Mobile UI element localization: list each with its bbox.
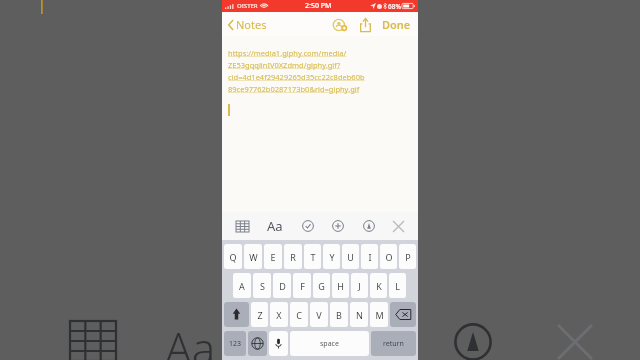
staticText: Aa [267, 217, 283, 235]
button[interactable]: F [293, 273, 311, 298]
staticText: Q [229, 251, 237, 263]
button[interactable]: 123 [224, 331, 246, 356]
staticText: J [358, 280, 361, 292]
staticText: ZE53gqqlinIV0XZdmd/giphy.gif? [228, 60, 341, 70]
staticText: H [337, 280, 344, 292]
staticText: Y [329, 251, 335, 263]
button[interactable]: Q [224, 244, 242, 269]
button[interactable]: Add [330, 218, 346, 234]
staticText: L [395, 280, 400, 292]
staticText: R [290, 251, 296, 263]
button[interactable]: M [370, 302, 388, 327]
staticText: G [318, 280, 325, 292]
button[interactable]: Close [391, 219, 406, 234]
staticText: E [270, 251, 276, 263]
button[interactable]: T [304, 244, 321, 269]
button[interactable]: C [290, 302, 308, 327]
button[interactable]: Switch keyboard [248, 331, 267, 356]
button[interactable]: R [284, 244, 302, 269]
staticText: space [320, 339, 339, 349]
button[interactable]: Y [323, 244, 340, 269]
staticText: A [239, 280, 245, 292]
button[interactable]: J [351, 273, 368, 298]
staticText: 123 [229, 339, 242, 349]
staticText: U [347, 251, 354, 263]
button[interactable]: B [330, 302, 348, 327]
button[interactable]: S [253, 273, 271, 298]
staticText: Z [257, 309, 263, 321]
button[interactable]: V [310, 302, 328, 327]
staticText: cid=4d1e4f29429265d35cc22c8deb60b [228, 72, 365, 82]
staticText: X [276, 309, 282, 321]
button[interactable]: Checklist [300, 218, 316, 234]
button[interactable]: E [264, 244, 282, 269]
staticText: 89ce97762b0287173b0&rid=giphy.gif [228, 84, 360, 94]
staticText: OISTER [237, 2, 258, 10]
staticText: M [375, 309, 384, 321]
staticText: N [356, 309, 363, 321]
button[interactable]: Aa [265, 215, 285, 237]
button[interactable]: P [399, 244, 416, 269]
staticText: 68% [388, 2, 401, 11]
button[interactable]: Shift [224, 302, 249, 327]
staticText: 2:50 PM [305, 1, 332, 11]
staticText: Done [382, 17, 411, 32]
staticText: O [385, 251, 393, 263]
button[interactable]: Dictate [269, 331, 288, 356]
button[interactable]: L [389, 273, 406, 298]
button[interactable]: A [233, 273, 251, 298]
staticText: V [316, 309, 322, 321]
button[interactable]: O [380, 244, 397, 269]
staticText: T [310, 251, 316, 263]
button[interactable]: I [361, 244, 378, 269]
button[interactable]: K [370, 273, 387, 298]
button[interactable]: Backspace [390, 302, 416, 327]
button[interactable]: X [270, 302, 288, 327]
staticText: Aa [165, 318, 216, 360]
button[interactable]: W [244, 244, 262, 269]
button[interactable]: H [332, 273, 349, 298]
button[interactable]: Table [234, 219, 251, 234]
button[interactable]: Add people [330, 15, 350, 35]
staticText: W [249, 251, 258, 263]
button[interactable]: Z [251, 302, 268, 327]
staticText: K [376, 280, 382, 292]
button[interactable]: Markup [361, 218, 377, 234]
button[interactable]: Notes [226, 14, 269, 35]
button[interactable]: N [350, 302, 368, 327]
button[interactable]: Share [357, 15, 374, 35]
button[interactable]: U [342, 244, 359, 269]
staticText: Notes [236, 17, 267, 32]
staticText: https://media1.giphy.com/media/ [228, 48, 347, 58]
staticText: I [368, 251, 372, 263]
staticText: return [383, 339, 404, 349]
button[interactable]: Done [380, 14, 413, 35]
staticText: B [336, 309, 342, 321]
button[interactable]: return [371, 331, 416, 356]
button[interactable]: G [313, 273, 330, 298]
button[interactable]: D [273, 273, 291, 298]
staticText: F [300, 280, 305, 292]
staticText: P [405, 251, 411, 263]
button[interactable]: space [290, 331, 369, 356]
staticText: C [296, 309, 302, 321]
staticText: S [260, 280, 265, 292]
staticText: D [279, 280, 286, 292]
